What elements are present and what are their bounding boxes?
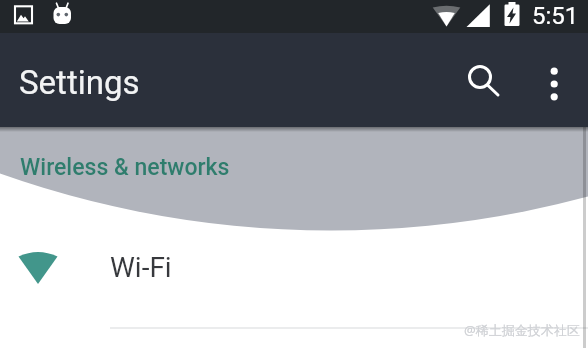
button[interactable]: More options [529,56,577,104]
staticText: Settings [19,63,140,102]
button[interactable]: Search [456,56,504,104]
staticText: 5:51 [532,2,579,30]
staticText: Wireless & networks [20,154,230,181]
button[interactable]: Wi-Fi [0,230,588,310]
staticText: Wi-Fi [110,251,172,284]
staticText: @稀土掘金技术社区 [464,321,580,339]
